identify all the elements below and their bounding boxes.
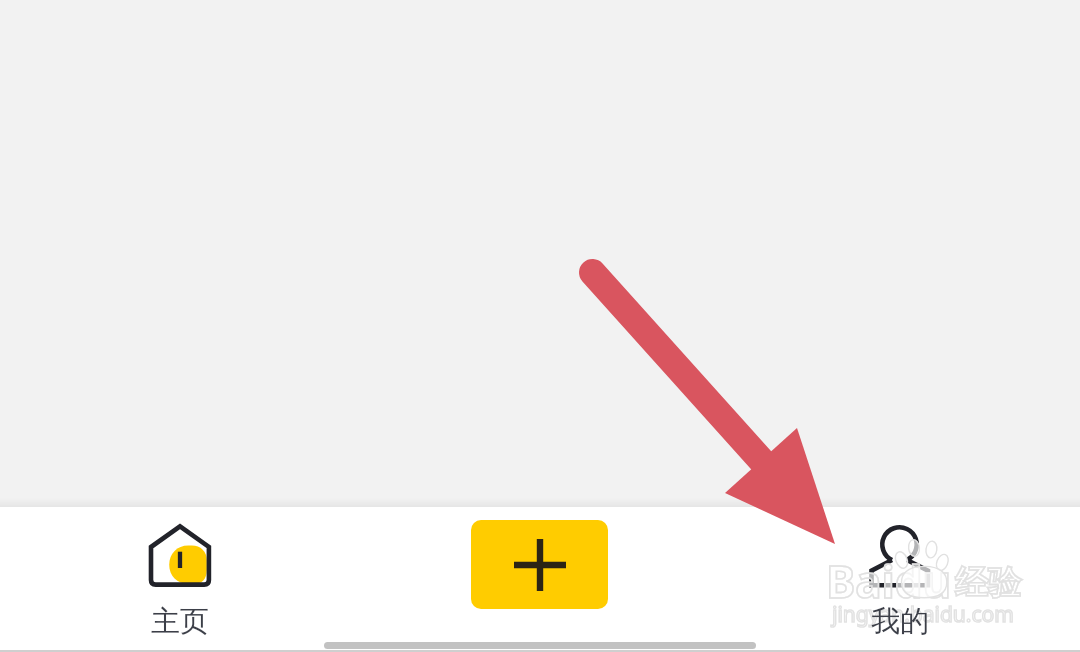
button[interactable]: 主页 [100,512,260,642]
staticText: jingyan.baidu.com [832,600,1014,629]
staticText: 主页 [100,603,260,640]
staticText: 我的 [820,603,980,640]
staticText: Baidu [826,551,952,611]
staticText: jingyan.baidu.com [832,600,1014,629]
button[interactable]: Add [471,520,608,609]
button[interactable]: 我的 [820,512,980,642]
staticText: Baidu [826,551,952,611]
staticText: 经验 [955,562,1021,604]
staticText: 经验 [955,562,1021,604]
